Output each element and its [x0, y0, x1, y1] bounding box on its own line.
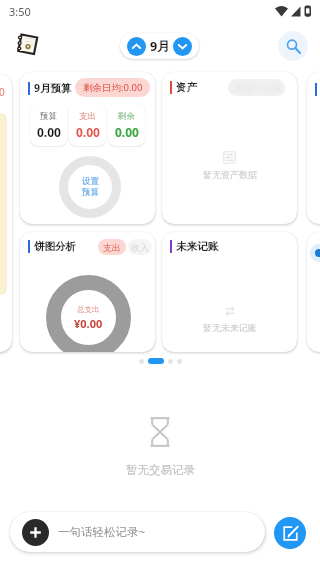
button[interactable]: Previous month [120, 33, 199, 59]
staticText: 暂无资产数据 [203, 169, 257, 180]
button[interactable]: 一句话轻松记录~ [10, 512, 265, 552]
staticText: 0.00 [0, 85, 5, 99]
staticText: 暂无交易记录 [126, 463, 195, 477]
button[interactable]: Account book [13, 31, 39, 57]
staticText: 0.00 [76, 124, 100, 140]
button[interactable]: 资产 [162, 72, 297, 224]
staticText: 未来记账 [176, 240, 218, 253]
staticText: 3:50 [9, 4, 31, 19]
button[interactable]: Search [278, 31, 308, 61]
staticText: ¥0.00 [74, 316, 103, 331]
staticText: 设置 [82, 176, 99, 187]
staticText: 剩余 [118, 111, 135, 122]
button[interactable]: 未来记账 [162, 232, 297, 352]
staticText: 支出 [103, 242, 121, 253]
button[interactable]: 收入 [128, 239, 152, 255]
button[interactable]: Previous month [127, 37, 146, 56]
staticText: 支出 [79, 111, 96, 122]
staticText: 资产 [176, 81, 197, 94]
button[interactable]: Next month [173, 37, 192, 56]
staticText: 0.00 [37, 124, 61, 140]
staticText: 剩余日均:0.00 [83, 81, 143, 94]
staticText: 饼图分析 [34, 240, 76, 253]
staticText: 暂无未来记账 [203, 322, 257, 333]
staticText: 0.00 [115, 124, 139, 140]
staticText: 收入 [131, 242, 149, 253]
staticText: 预算 [40, 111, 57, 122]
staticText: 预算 [82, 187, 99, 198]
staticText: 9月 [150, 38, 170, 55]
button[interactable]: 9月预算 [20, 72, 155, 224]
button[interactable]: 支出 [98, 239, 126, 255]
staticText: 总支出 [77, 305, 100, 314]
button[interactable]: New record [274, 517, 306, 549]
button[interactable]: 饼图分析 [20, 232, 155, 352]
staticText: 9月预算 [34, 81, 72, 95]
staticText: 一句话轻松记录~ [58, 524, 146, 540]
